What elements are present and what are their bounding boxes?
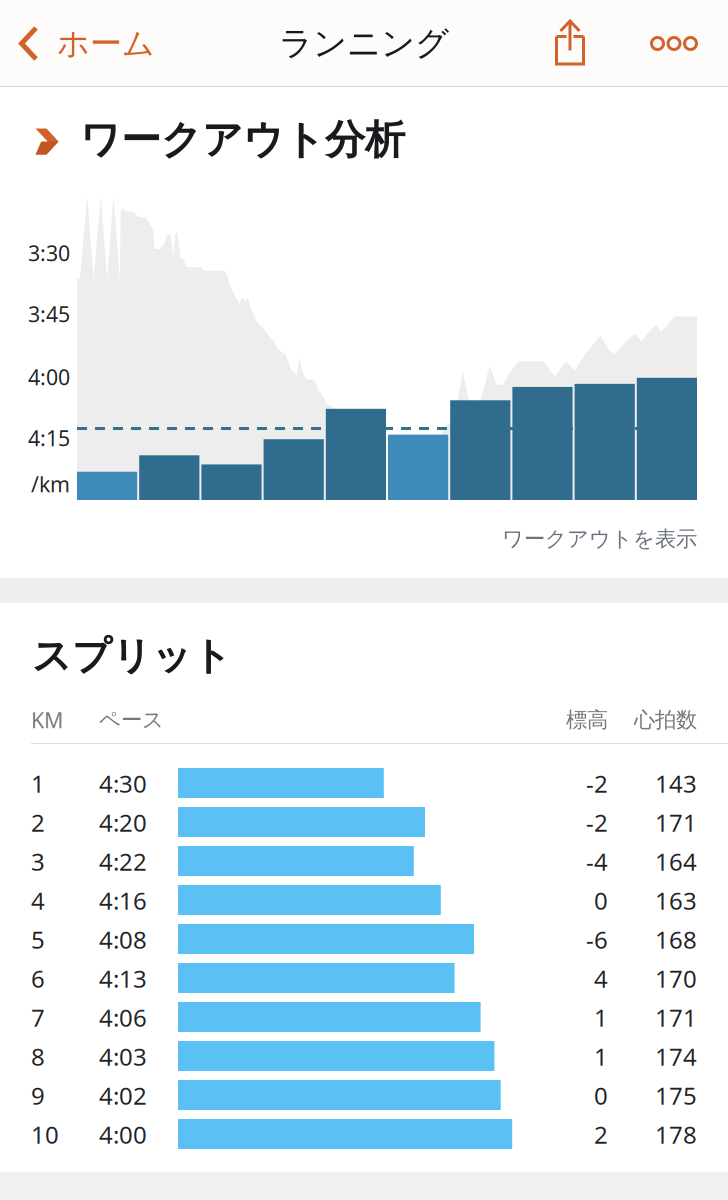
- staticText: 163: [655, 885, 697, 916]
- staticText: 4:30: [99, 768, 147, 799]
- staticText: 標高: [566, 707, 608, 733]
- staticText: 3:30: [28, 239, 70, 267]
- staticText: 1: [31, 768, 45, 799]
- staticText: 2: [594, 1119, 608, 1150]
- staticText: 8: [31, 1041, 45, 1072]
- staticText: スプリット: [32, 632, 232, 680]
- button[interactable]: ホーム: [18, 0, 198, 87]
- staticText: 4:15: [28, 424, 70, 452]
- staticText: 5: [31, 924, 45, 955]
- staticText: 4: [31, 885, 45, 916]
- button[interactable]: ワークアウトを表示: [397, 519, 697, 559]
- staticText: ワークアウトを表示: [502, 526, 697, 552]
- staticText: 143: [655, 768, 697, 799]
- staticText: 10: [31, 1119, 59, 1150]
- staticText: 170: [655, 963, 697, 994]
- staticText: ペース: [99, 707, 164, 733]
- staticText: 0: [594, 885, 608, 916]
- staticText: KM: [31, 706, 63, 734]
- staticText: 4:13: [99, 963, 147, 994]
- staticText: -2: [586, 807, 608, 838]
- staticText: ワークアウト分析: [80, 115, 405, 164]
- staticText: 4:16: [99, 885, 147, 916]
- staticText: 4:08: [99, 924, 147, 955]
- staticText: 1: [594, 1041, 608, 1072]
- staticText: /km: [31, 470, 70, 498]
- staticText: 7: [31, 1002, 45, 1033]
- staticText: 3: [31, 846, 45, 877]
- staticText: 168: [655, 924, 697, 955]
- staticText: 4:00: [99, 1119, 147, 1150]
- button[interactable]: 共有: [526, 0, 614, 86]
- staticText: 171: [655, 1002, 697, 1033]
- staticText: 4:02: [99, 1080, 147, 1111]
- staticText: 3:45: [28, 300, 70, 328]
- staticText: 164: [655, 846, 697, 877]
- staticText: 171: [655, 807, 697, 838]
- staticText: 4:22: [99, 846, 147, 877]
- staticText: 4: [594, 963, 608, 994]
- staticText: -4: [586, 846, 608, 877]
- staticText: 4:20: [99, 807, 147, 838]
- staticText: 2: [31, 807, 45, 838]
- staticText: 0: [594, 1080, 608, 1111]
- staticText: 178: [655, 1119, 697, 1150]
- button[interactable]: その他のオプション: [626, 0, 722, 87]
- staticText: 4:03: [99, 1041, 147, 1072]
- staticText: 175: [655, 1080, 697, 1111]
- staticText: 174: [655, 1041, 697, 1072]
- staticText: ホーム: [57, 24, 155, 63]
- staticText: ランニング: [279, 23, 449, 64]
- staticText: 4:06: [99, 1002, 147, 1033]
- staticText: -6: [586, 924, 608, 955]
- staticText: -2: [586, 768, 608, 799]
- staticText: 4:00: [28, 363, 70, 391]
- staticText: 心拍数: [634, 707, 697, 733]
- staticText: 6: [31, 963, 45, 994]
- staticText: 9: [31, 1080, 45, 1111]
- staticText: 1: [594, 1002, 608, 1033]
